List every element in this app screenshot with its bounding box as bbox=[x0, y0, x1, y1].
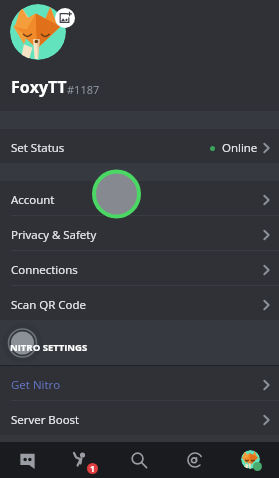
button[interactable]: Connections bbox=[0, 251, 279, 285]
staticText: #1187 bbox=[67, 82, 100, 97]
staticText: NITRO SETTINGS bbox=[10, 341, 88, 354]
button[interactable]: Home bbox=[0, 442, 55, 478]
button[interactable]: Mentions bbox=[167, 442, 223, 478]
button[interactable]: Set Status bbox=[0, 129, 279, 163]
button[interactable]: Scan QR Code bbox=[0, 286, 279, 320]
button[interactable]: Get Nitro bbox=[0, 366, 279, 400]
button[interactable]: You bbox=[223, 442, 279, 478]
button[interactable]: Search bbox=[111, 442, 167, 478]
button[interactable]: Account bbox=[0, 181, 279, 215]
staticText: Account bbox=[11, 192, 55, 208]
staticText: Connections bbox=[11, 262, 78, 278]
button[interactable]: Friends bbox=[55, 442, 111, 478]
staticText: Get Nitro bbox=[11, 377, 61, 393]
button[interactable]: Server Boost bbox=[0, 401, 279, 435]
button[interactable]: Change avatar bbox=[55, 8, 75, 28]
staticText: Set Status bbox=[11, 140, 65, 156]
staticText: Privacy & Safety bbox=[11, 227, 97, 243]
staticText: Server Boost bbox=[11, 412, 80, 428]
staticText: Online bbox=[222, 140, 258, 156]
staticText: FoxyTT bbox=[11, 76, 67, 98]
staticText: 1 bbox=[90, 463, 95, 474]
button[interactable]: Privacy & Safety bbox=[0, 216, 279, 250]
staticText: Scan QR Code bbox=[11, 297, 86, 313]
